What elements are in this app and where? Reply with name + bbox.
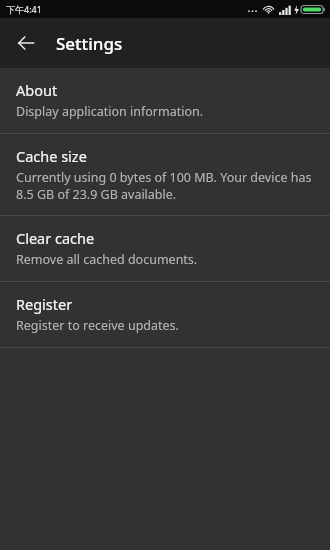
staticText: Clear cache (16, 228, 95, 248)
staticText: Remove all cached documents. (16, 251, 198, 268)
staticText: Register (16, 294, 73, 314)
button[interactable]: Clear cache (0, 216, 330, 281)
staticText: 下午4:41 (6, 3, 42, 15)
staticText: Settings (56, 32, 123, 55)
button[interactable]: Back (10, 27, 42, 59)
staticText: Cache size (16, 146, 87, 166)
button[interactable]: Register (0, 282, 330, 347)
staticText: Register to receive updates. (16, 317, 179, 334)
button[interactable]: Cache size (0, 134, 330, 215)
staticText: About (16, 80, 58, 100)
staticText: Currently using 0 bytes of 100 MB. Your … (16, 169, 312, 202)
staticText: Display application information. (16, 103, 204, 120)
button[interactable]: About (0, 68, 330, 133)
